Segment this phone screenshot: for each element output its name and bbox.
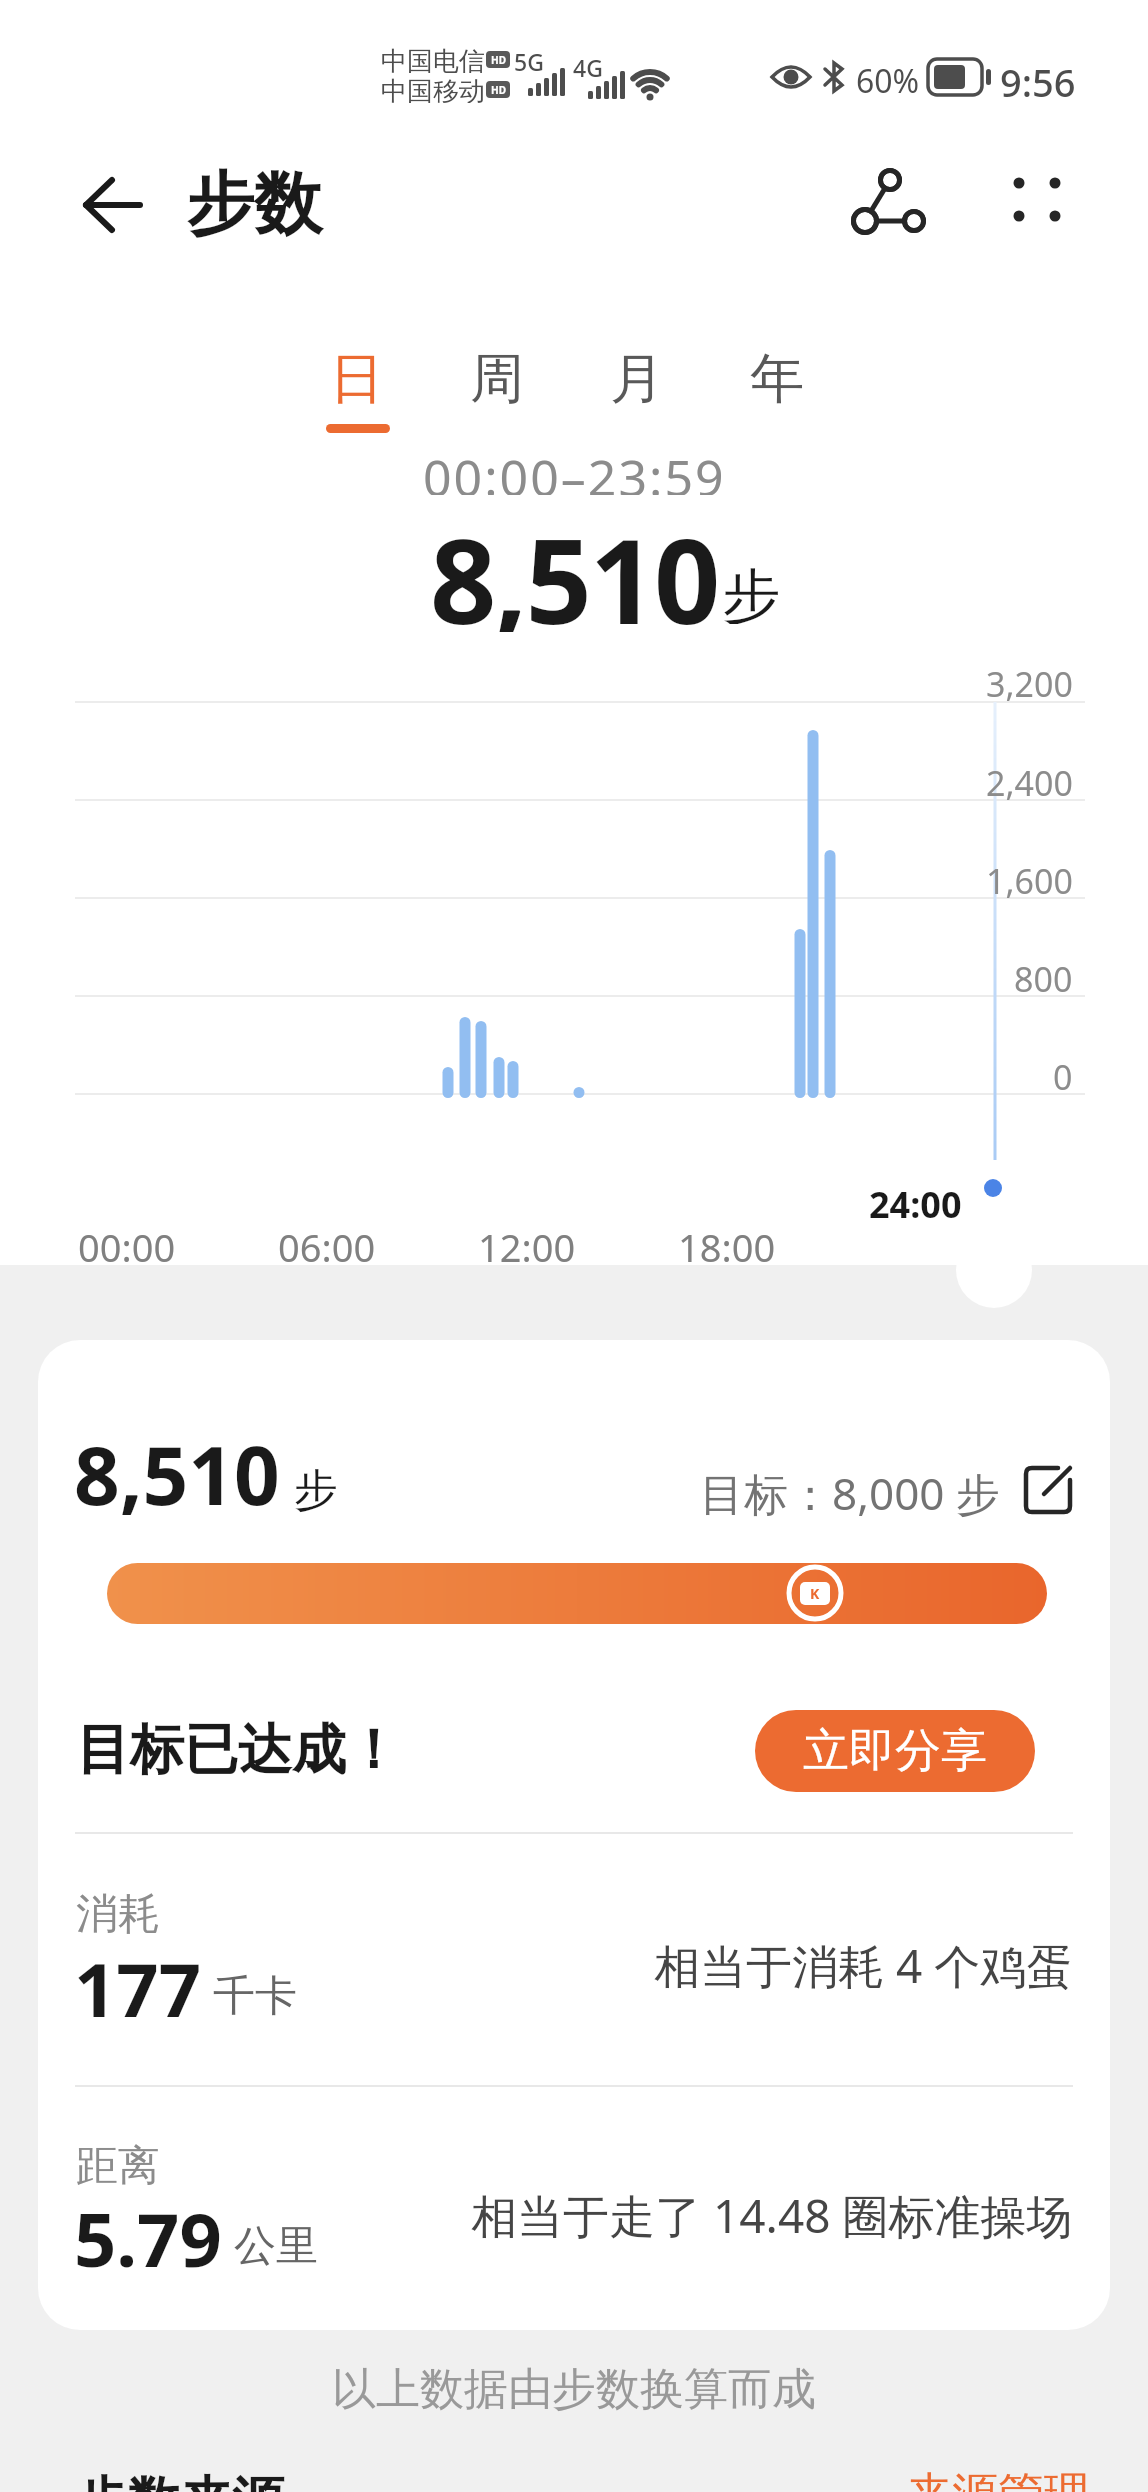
staticText: 00:00: [78, 1221, 176, 1269]
staticText: 立即分享: [803, 1722, 987, 1780]
staticText: HD: [491, 53, 506, 67]
staticText: 5.79: [74, 2188, 222, 2276]
staticText: 5G: [514, 46, 544, 72]
staticText: 距离: [76, 2140, 160, 2190]
staticText: 公里: [234, 2220, 318, 2273]
staticText: 消耗: [76, 1888, 160, 1938]
button[interactable]: 立即分享: [755, 1710, 1035, 1792]
staticText: 177: [74, 1938, 201, 2026]
button[interactable]: 日: [307, 344, 407, 414]
staticText: HD: [491, 83, 506, 97]
button[interactable]: 月: [587, 344, 687, 414]
staticText: 周: [470, 345, 524, 413]
staticText: 3,200: [986, 661, 1073, 707]
staticText: K: [810, 1584, 820, 1603]
staticText: 800: [1014, 956, 1073, 1002]
button[interactable]: 周: [447, 344, 547, 414]
staticText: 年: [750, 345, 804, 413]
staticText: 24:00: [869, 1180, 962, 1228]
staticText: 2,400: [986, 760, 1073, 806]
staticText: 步数: [186, 162, 322, 248]
button[interactable]: [956, 1232, 1032, 1308]
staticText: 00:00–23:59: [423, 443, 726, 495]
staticText: 06:00: [278, 1221, 376, 1269]
staticText: 8,510: [74, 1419, 280, 1521]
staticText: 步: [722, 560, 780, 624]
staticText: 18:00: [678, 1221, 776, 1269]
staticText: 0: [1053, 1054, 1073, 1100]
staticText: 步: [294, 1463, 338, 1518]
staticText: 以上数据由步数换算而成: [332, 2362, 816, 2414]
staticText: 中国移动: [381, 75, 485, 103]
staticText: 12:00: [478, 1221, 576, 1269]
staticText: 4G: [573, 52, 603, 78]
staticText: 目标已达成！: [76, 1716, 400, 1784]
staticText: 目标：8,000 步: [700, 1463, 1000, 1519]
staticText: 相当于走了 14.48 圈标准操场: [471, 2184, 1073, 2240]
staticText: 8,510: [430, 500, 719, 632]
staticText: 步数来源: [76, 2469, 284, 2492]
staticText: 相当于消耗 4 个鸡蛋: [654, 1934, 1073, 1990]
button[interactable]: [1018, 1460, 1082, 1524]
staticText: 9:56: [1000, 56, 1076, 98]
staticText: 月: [610, 345, 664, 413]
button[interactable]: [1002, 166, 1072, 234]
staticText: 中国电信: [381, 45, 485, 73]
staticText: 60%: [856, 59, 920, 95]
button[interactable]: 年: [727, 344, 827, 414]
button[interactable]: [845, 158, 935, 248]
button[interactable]: [66, 168, 156, 242]
staticText: 1,600: [986, 858, 1073, 904]
staticText: 千卡: [213, 1970, 297, 2023]
button[interactable]: 来源管理: [690, 2460, 1090, 2492]
staticText: 日: [330, 345, 384, 413]
staticText: 来源管理: [906, 2466, 1090, 2492]
